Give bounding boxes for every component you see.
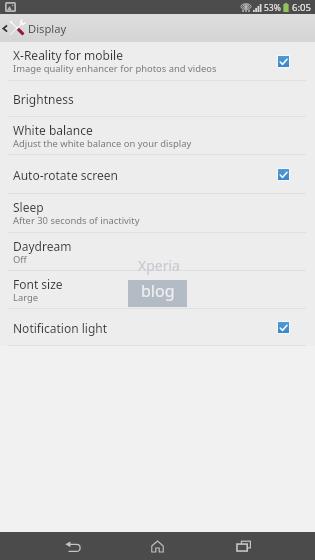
- staticText: Display: [28, 21, 67, 36]
- staticText: Font size: [13, 276, 63, 292]
- button[interactable]: Notification light: [0, 309, 315, 346]
- staticText: Image quality enhancer for photos and vi…: [13, 62, 217, 75]
- staticText: Sleep: [13, 199, 44, 215]
- button[interactable]: Daydream: [0, 233, 315, 271]
- button[interactable]: Back: [52, 532, 93, 560]
- staticText: Daydream: [13, 238, 72, 254]
- button[interactable]: X-Reality for mobile: [0, 42, 315, 81]
- staticText: X-Reality for mobile: [13, 47, 123, 63]
- button[interactable]: Brightness: [0, 81, 315, 117]
- staticText: Auto-rotate screen: [13, 167, 118, 183]
- button[interactable]: Recent apps: [223, 532, 264, 560]
- staticText: After 30 seconds of inactivity: [13, 214, 140, 227]
- other: Back: [2, 23, 8, 34]
- staticText: White balance: [13, 122, 93, 138]
- button[interactable]: Back: [0, 18, 29, 38]
- staticText: Notification light: [13, 320, 108, 336]
- staticText: blog: [141, 280, 175, 302]
- button[interactable]: Home: [137, 532, 178, 560]
- staticText: Adjust the white balance on your display: [13, 137, 192, 150]
- staticText: 53%: [264, 2, 281, 14]
- staticText: Off: [13, 253, 27, 266]
- button[interactable]: Font size: [0, 271, 315, 309]
- button[interactable]: Auto-rotate screen: [0, 155, 315, 194]
- button[interactable]: White balance: [0, 117, 315, 155]
- staticText: Xperia: [138, 256, 180, 275]
- staticText: 6:05: [292, 1, 311, 14]
- staticText: Large: [13, 291, 39, 304]
- staticText: Brightness: [13, 91, 74, 107]
- button[interactable]: Sleep: [0, 194, 315, 233]
